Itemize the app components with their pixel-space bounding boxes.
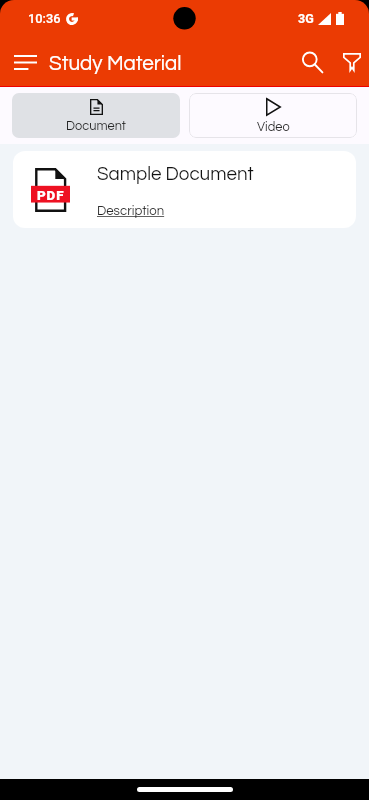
staticText: Video — [257, 121, 290, 134]
staticText: 10:36 — [28, 11, 61, 26]
button[interactable]: Video — [189, 93, 357, 138]
staticText: Sample Document — [97, 165, 254, 184]
button[interactable]: Open navigation menu — [0, 38, 48, 86]
staticText: PDF — [37, 188, 65, 204]
button[interactable]: Search — [289, 42, 329, 82]
staticText: 3G — [298, 11, 314, 26]
staticText: Document — [66, 120, 126, 133]
button[interactable]: PDF — [13, 151, 356, 228]
staticText: Study Material — [49, 53, 182, 74]
button[interactable]: Filter — [329, 42, 369, 82]
button[interactable]: Document — [12, 93, 180, 138]
staticText: Description — [97, 204, 165, 218]
